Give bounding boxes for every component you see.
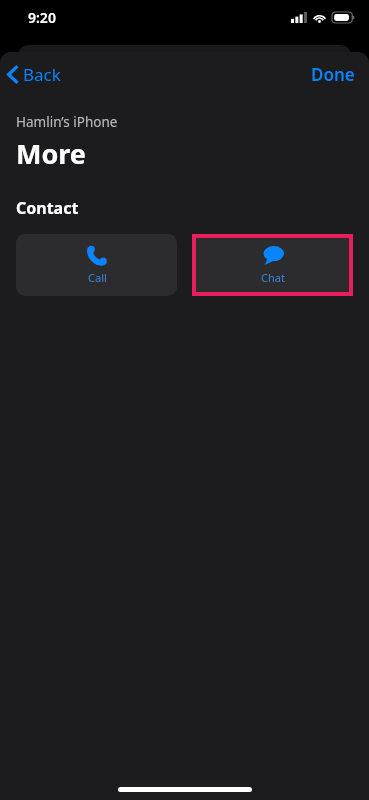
staticText: Back (23, 63, 61, 86)
button[interactable]: Chat (192, 234, 353, 296)
other: Call (87, 245, 107, 265)
staticText: Contact (16, 197, 79, 219)
staticText: Chat (261, 270, 285, 285)
button[interactable]: Back (0, 57, 71, 92)
button[interactable]: Call (16, 234, 177, 296)
staticText: Call (88, 270, 107, 285)
staticText: Done (311, 63, 355, 86)
staticText: More (16, 135, 86, 172)
button[interactable]: Done (297, 55, 369, 94)
staticText: Hamlin’s iPhone (16, 113, 118, 131)
staticText: 9:20 (28, 8, 56, 27)
other: Chat (262, 246, 284, 265)
